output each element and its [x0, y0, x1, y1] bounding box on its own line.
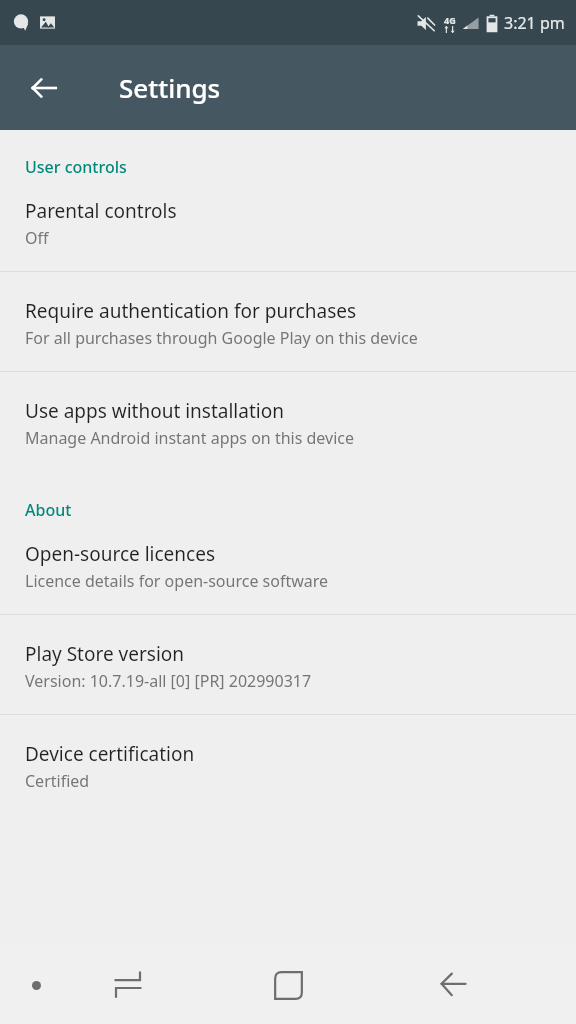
staticText: 4G: [444, 14, 456, 26]
button[interactable]: Home: [257, 954, 319, 1016]
button[interactable]: Back: [14, 58, 74, 118]
staticText: Require authentication for purchases: [25, 298, 357, 324]
button[interactable]: Back: [423, 955, 483, 1015]
staticText: Settings: [119, 70, 221, 105]
staticText: User controls: [25, 156, 127, 178]
staticText: Manage Android instant apps on this devi…: [25, 427, 355, 449]
staticText: 3:21 pm: [504, 12, 565, 34]
button[interactable]: Menu: [8, 957, 64, 1013]
button[interactable]: Play Store version: [0, 615, 576, 714]
staticText: Off: [25, 227, 49, 249]
button[interactable]: Require authentication for purchases: [0, 272, 576, 371]
button[interactable]: Use apps without installation: [0, 372, 576, 471]
button[interactable]: Device certification: [0, 715, 576, 814]
staticText: Certified: [25, 770, 90, 792]
staticText: Open-source licences: [25, 541, 216, 567]
button[interactable]: Parental controls: [0, 184, 576, 271]
staticText: About: [25, 499, 72, 521]
staticText: For all purchases through Google Play on…: [25, 327, 418, 349]
staticText: Licence details for open-source software: [25, 570, 329, 592]
staticText: Version: 10.7.19-all [0] [PR] 202990317: [25, 670, 312, 692]
staticText: Device certification: [25, 741, 195, 767]
staticText: Play Store version: [25, 641, 185, 667]
staticText: Parental controls: [25, 198, 177, 224]
button[interactable]: Recent apps: [98, 955, 158, 1015]
button[interactable]: Open-source licences: [0, 527, 576, 614]
staticText: Use apps without installation: [25, 398, 284, 424]
